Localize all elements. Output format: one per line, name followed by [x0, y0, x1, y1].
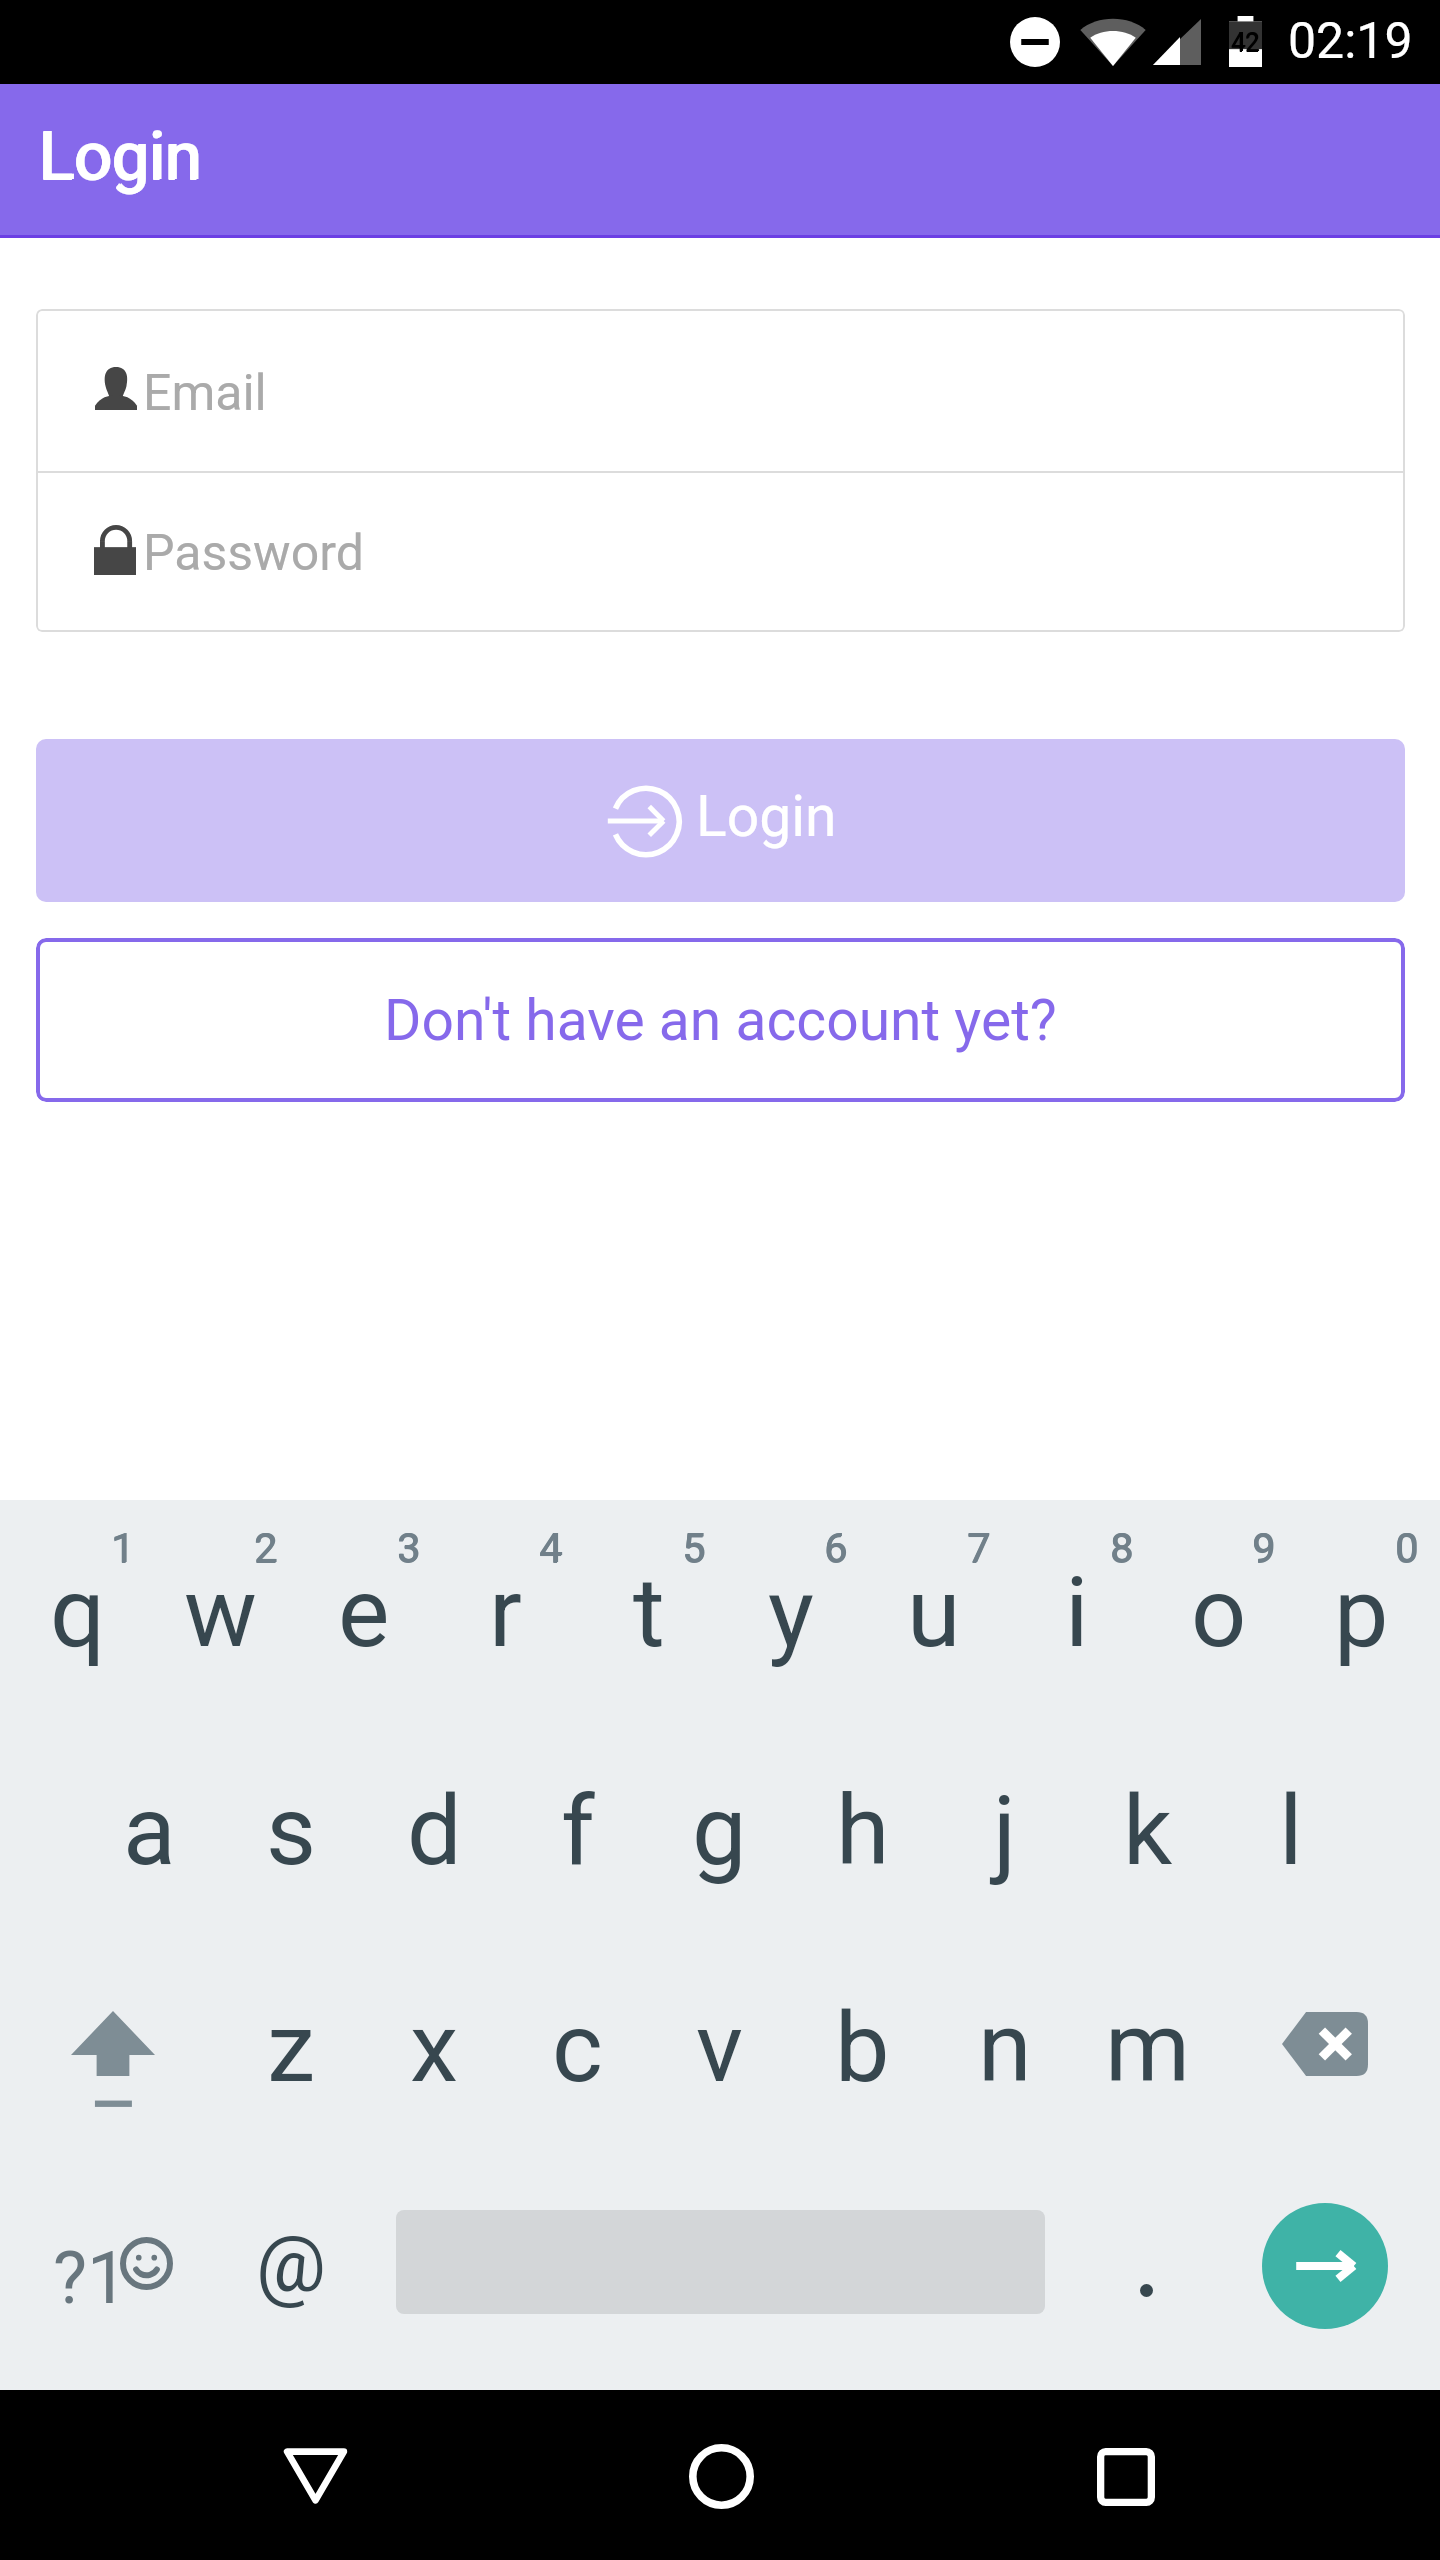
- button[interactable]: 8: [1005, 1500, 1148, 1722]
- staticText: 1: [111, 1525, 135, 1573]
- staticText: y: [768, 1556, 814, 1670]
- button[interactable]: k: [1076, 1722, 1219, 1944]
- button[interactable]: x: [363, 1944, 506, 2166]
- button[interactable]: Email field: [36, 309, 1405, 471]
- staticText: 8: [1111, 1524, 1135, 1572]
- staticText: a: [123, 1774, 176, 1888]
- staticText: Email: [143, 364, 267, 423]
- button[interactable]: 7: [862, 1500, 1005, 1722]
- staticText: 1: [112, 1524, 136, 1572]
- button[interactable]: c: [506, 1944, 649, 2166]
- button[interactable]: @: [216, 2166, 384, 2390]
- staticText: 4: [539, 1525, 563, 1573]
- staticText: 6: [825, 1524, 849, 1572]
- staticText: g: [692, 1774, 747, 1888]
- button[interactable]: Login: [36, 739, 1405, 902]
- button[interactable]: b: [791, 1944, 934, 2166]
- staticText: i: [1065, 1556, 1089, 1670]
- staticText: l: [1279, 1774, 1303, 1888]
- button[interactable]: j: [933, 1722, 1076, 1944]
- staticText: j: [993, 1774, 1017, 1888]
- staticText: m: [1105, 1991, 1191, 2105]
- staticText: e: [338, 1556, 390, 1670]
- button[interactable]: 2: [149, 1500, 292, 1722]
- staticText: 6: [824, 1524, 848, 1572]
- staticText: t: [633, 1556, 665, 1670]
- button[interactable]: Delete: [1219, 1944, 1433, 2166]
- staticText: 1: [111, 1524, 135, 1572]
- staticText: k: [1123, 1774, 1173, 1888]
- staticText: 42: [1231, 29, 1260, 58]
- button[interactable]: z: [220, 1944, 363, 2166]
- staticText: 42: [1232, 28, 1261, 57]
- button[interactable]: 3: [292, 1500, 435, 1722]
- staticText: w: [184, 1556, 257, 1670]
- staticText: 0: [1395, 1525, 1419, 1573]
- button[interactable]: Symbols and emoji: [0, 2166, 216, 2390]
- staticText: 5: [682, 1525, 706, 1573]
- staticText: 7: [968, 1524, 992, 1572]
- staticText: 9: [1252, 1525, 1276, 1573]
- button[interactable]: g: [648, 1722, 791, 1944]
- staticText: 8: [1110, 1525, 1134, 1573]
- button[interactable]: h: [791, 1722, 934, 1944]
- staticText: 9: [1253, 1524, 1277, 1572]
- staticText: s: [266, 1774, 317, 1888]
- staticText: 2: [255, 1524, 279, 1572]
- staticText: 0: [1395, 1524, 1419, 1572]
- staticText: 7: [967, 1525, 991, 1573]
- button[interactable]: Shift: [0, 1944, 220, 2166]
- staticText: 0: [1396, 1524, 1420, 1572]
- button[interactable]: f: [506, 1722, 649, 1944]
- button[interactable]: d: [363, 1722, 506, 1944]
- staticText: 4: [540, 1524, 564, 1572]
- staticText: v: [696, 1991, 743, 2105]
- button[interactable]: 5: [577, 1500, 720, 1722]
- staticText: x: [410, 1991, 459, 2105]
- button[interactable]: v: [648, 1944, 791, 2166]
- staticText: c: [552, 1991, 603, 2105]
- staticText: 5: [682, 1524, 706, 1572]
- button[interactable]: 9: [1147, 1500, 1290, 1722]
- staticText: Login: [40, 118, 203, 195]
- button[interactable]: Home: [661, 2416, 781, 2536]
- button[interactable]: n: [933, 1944, 1076, 2166]
- button[interactable]: Don't have an account yet?: [36, 938, 1405, 1102]
- button[interactable]: m: [1076, 1944, 1219, 2166]
- staticText: q: [50, 1556, 106, 1670]
- button[interactable]: a: [78, 1722, 221, 1944]
- button[interactable]: Enter: [1230, 2166, 1440, 2390]
- button[interactable]: s: [220, 1722, 363, 1944]
- button[interactable]: l: [1219, 1722, 1362, 1944]
- staticText: 3: [397, 1525, 421, 1573]
- button[interactable]: 6: [719, 1500, 862, 1722]
- button[interactable]: Period: [1060, 2166, 1230, 2390]
- staticText: 4: [539, 1524, 563, 1572]
- staticText: z: [267, 1991, 316, 2105]
- staticText: Password: [143, 524, 364, 583]
- button[interactable]: 4: [434, 1500, 577, 1722]
- staticText: 7: [967, 1524, 991, 1572]
- button[interactable]: Space: [384, 2166, 1060, 2390]
- button[interactable]: Recent apps: [1066, 2417, 1186, 2537]
- staticText: u: [907, 1556, 961, 1670]
- staticText: ?1: [53, 2236, 128, 2320]
- staticText: o: [1191, 1556, 1247, 1670]
- staticText: Login: [38, 118, 201, 195]
- button[interactable]: 1: [6, 1500, 149, 1722]
- staticText: 02:19: [1288, 12, 1413, 71]
- staticText: 9: [1252, 1524, 1276, 1572]
- staticText: d: [407, 1774, 462, 1888]
- staticText: 6: [824, 1525, 848, 1573]
- button[interactable]: Password field: [36, 473, 1405, 632]
- staticText: r: [489, 1556, 522, 1670]
- staticText: 5: [683, 1524, 707, 1572]
- staticText: 2: [254, 1525, 278, 1573]
- button[interactable]: Back: [255, 2416, 375, 2536]
- staticText: p: [1334, 1556, 1389, 1670]
- staticText: n: [978, 1991, 1032, 2105]
- button[interactable]: 0: [1290, 1500, 1433, 1722]
- staticText: Login: [38, 119, 201, 196]
- staticText: 8: [1110, 1524, 1134, 1572]
- staticText: 2: [254, 1524, 278, 1572]
